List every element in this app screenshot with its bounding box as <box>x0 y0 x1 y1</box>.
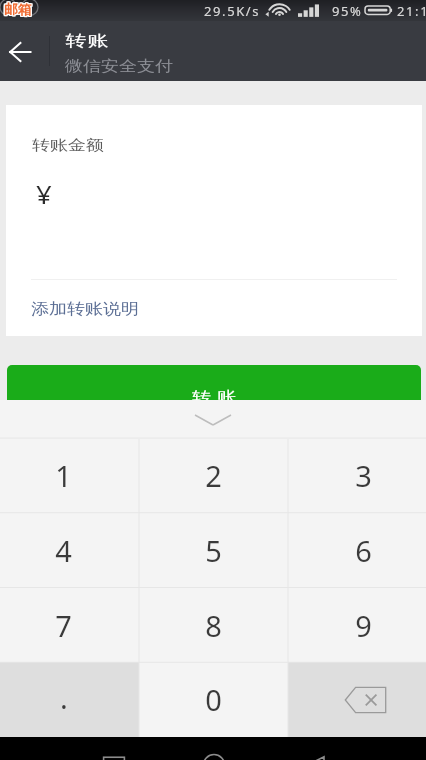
button[interactable]: Home <box>194 737 234 760</box>
staticText: 邮箱 <box>4 0 32 17</box>
button[interactable]: 1 <box>0 438 139 513</box>
staticText: 邮箱 <box>3 1 31 18</box>
button[interactable]: 2 <box>139 438 288 513</box>
button[interactable]: Back <box>296 737 336 760</box>
button[interactable]: 0 <box>139 662 288 737</box>
staticText: 添加转账说明 <box>31 300 139 319</box>
button[interactable]: Back <box>0 21 48 81</box>
button[interactable]: Recent apps <box>94 737 134 760</box>
staticText: . <box>60 678 68 717</box>
button[interactable]: 9 <box>288 588 426 663</box>
staticText: 0 <box>205 680 222 719</box>
button[interactable]: 6 <box>288 513 426 588</box>
button[interactable]: Hide keyboard <box>0 400 426 438</box>
staticText: 邮箱 <box>3 2 31 19</box>
staticText: 5 <box>205 531 222 570</box>
staticText: 邮箱 <box>4 1 32 18</box>
staticText: 9 <box>355 606 372 645</box>
staticText: 邮箱 <box>5 0 33 17</box>
staticText: 4 <box>55 531 72 570</box>
button[interactable]: 3 <box>288 438 426 513</box>
button[interactable]: 5 <box>139 513 288 588</box>
staticText: 转账 <box>65 32 109 50</box>
staticText: 转账金额 <box>32 136 104 155</box>
button[interactable]: 转账 <box>7 365 421 415</box>
button[interactable]: 4 <box>0 513 139 588</box>
staticText: 8 <box>205 606 222 645</box>
staticText: 微信安全支付 <box>65 57 173 76</box>
staticText: 95% <box>332 2 363 20</box>
staticText: 邮箱 <box>4 2 32 19</box>
staticText: 邮箱 <box>5 1 33 18</box>
staticText: 1 <box>55 456 72 495</box>
staticText: 邮箱 <box>5 2 33 19</box>
other: Backspace <box>344 686 387 714</box>
staticText: 7 <box>55 606 72 645</box>
staticText: ¥ <box>36 177 52 211</box>
button[interactable]: Backspace <box>288 662 426 737</box>
button[interactable]: . <box>0 662 139 737</box>
staticText: 6 <box>355 531 372 570</box>
staticText: 2 <box>205 456 222 495</box>
button[interactable]: 添加转账说明 <box>25 295 145 324</box>
staticText: 转账 <box>189 388 239 406</box>
staticText: 邮箱 <box>3 0 31 17</box>
staticText: 21:15 <box>397 2 426 20</box>
staticText: 3 <box>355 456 372 495</box>
staticText: 29.5K/s <box>204 2 261 20</box>
button[interactable]: 7 <box>0 588 139 663</box>
button[interactable]: 8 <box>139 588 288 663</box>
